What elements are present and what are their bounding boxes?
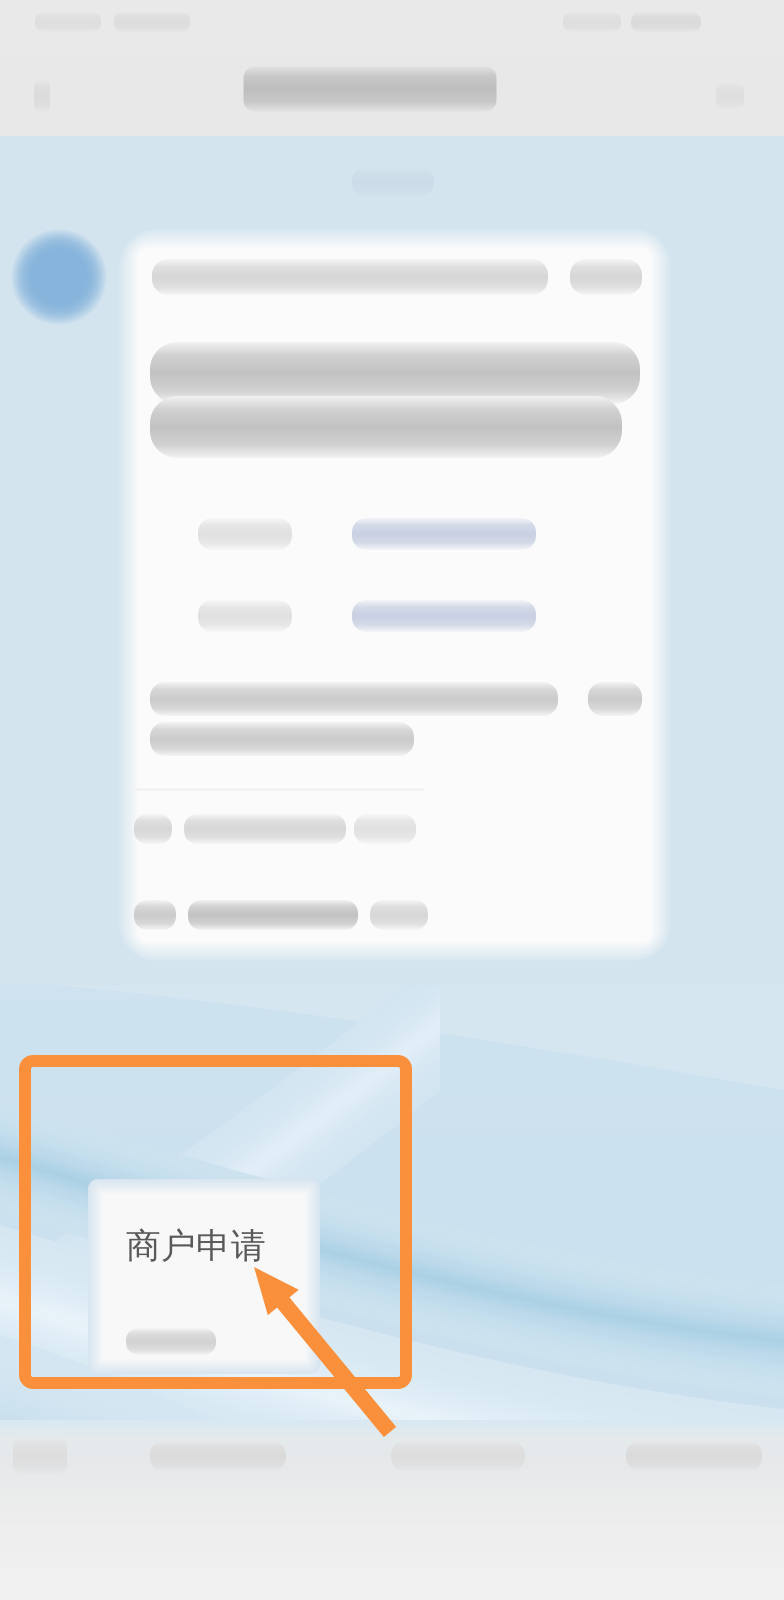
button[interactable]: Keyboard xyxy=(0,1419,100,1493)
button[interactable]: Back xyxy=(0,54,88,138)
button[interactable]: Menu item 1 xyxy=(118,1419,318,1493)
button[interactable]: Menu item xyxy=(96,1283,312,1366)
button[interactable]: Menu item 2 xyxy=(358,1419,558,1493)
staticText: 商户申请 xyxy=(126,1225,266,1267)
button[interactable]: More options xyxy=(684,54,776,138)
button[interactable]: 商户申请 xyxy=(96,1187,312,1283)
button[interactable]: Menu item 3 xyxy=(594,1419,784,1493)
